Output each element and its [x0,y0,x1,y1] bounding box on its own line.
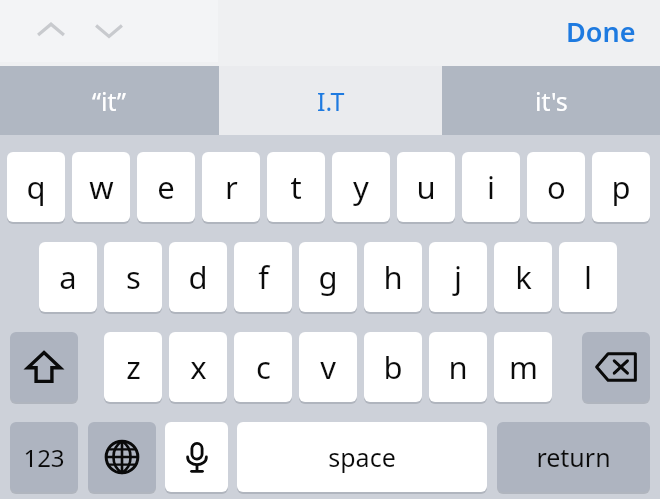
button[interactable]: return [497,422,650,492]
staticText: p [611,166,631,208]
button[interactable]: w [72,152,130,222]
button[interactable]: Backspace [582,332,650,402]
staticText: j [454,256,462,298]
staticText: n [448,346,468,388]
staticText: x [190,346,207,388]
button[interactable]: I.T [219,66,442,135]
button[interactable]: “it” [0,66,218,135]
button[interactable]: n [429,332,487,402]
staticText: I.T [317,84,345,118]
staticText: e [157,166,175,208]
button[interactable]: g [299,242,357,312]
button[interactable]: k [494,242,552,312]
button[interactable]: it's [443,66,660,135]
button[interactable]: y [332,152,390,222]
staticText: h [383,256,403,298]
button[interactable]: b [364,332,422,402]
staticText: q [26,166,46,208]
button[interactable]: Change keyboard [88,422,156,492]
staticText: i [487,166,495,208]
staticText: u [416,166,436,208]
button[interactable]: Next field [86,8,132,54]
button[interactable]: d [169,242,227,312]
button[interactable]: v [299,332,357,402]
button[interactable]: x [169,332,227,402]
staticText: a [59,256,77,298]
button[interactable]: Shift [10,332,78,402]
staticText: 123 [23,441,65,474]
button[interactable]: Previous field [28,8,74,54]
staticText: g [318,256,338,298]
button[interactable]: e [137,152,195,222]
button[interactable]: c [234,332,292,402]
button[interactable]: t [267,152,325,222]
staticText: o [547,166,566,208]
button[interactable]: Dictate [165,422,228,492]
button[interactable]: 123 [10,422,78,492]
staticText: y [353,166,369,208]
staticText: z [126,346,141,388]
staticText: s [126,256,141,298]
staticText: r [225,166,238,208]
button[interactable]: z [104,332,162,402]
button[interactable]: f [234,242,292,312]
button[interactable]: o [527,152,585,222]
button[interactable]: s [104,242,162,312]
staticText: f [258,256,269,298]
staticText: l [584,256,592,298]
button[interactable]: q [7,152,65,222]
staticText: return [536,440,611,474]
button[interactable]: r [202,152,260,222]
staticText: d [188,256,208,298]
button[interactable]: space [237,422,487,492]
button[interactable]: p [592,152,650,222]
staticText: w [89,166,114,208]
button[interactable]: a [39,242,97,312]
staticText: space [328,440,396,474]
staticText: v [320,346,336,388]
staticText: it's [535,84,568,118]
button[interactable]: l [559,242,617,312]
staticText: “it” [92,84,126,118]
button[interactable]: h [364,242,422,312]
button[interactable]: u [397,152,455,222]
staticText: b [383,346,403,388]
staticText: k [515,256,532,298]
staticText: t [290,166,302,208]
staticText: Done [566,13,636,50]
button[interactable]: i [462,152,520,222]
button[interactable]: Done [556,6,646,56]
staticText: m [509,346,538,388]
button[interactable]: j [429,242,487,312]
staticText: c [256,346,271,388]
button[interactable]: m [494,332,552,402]
